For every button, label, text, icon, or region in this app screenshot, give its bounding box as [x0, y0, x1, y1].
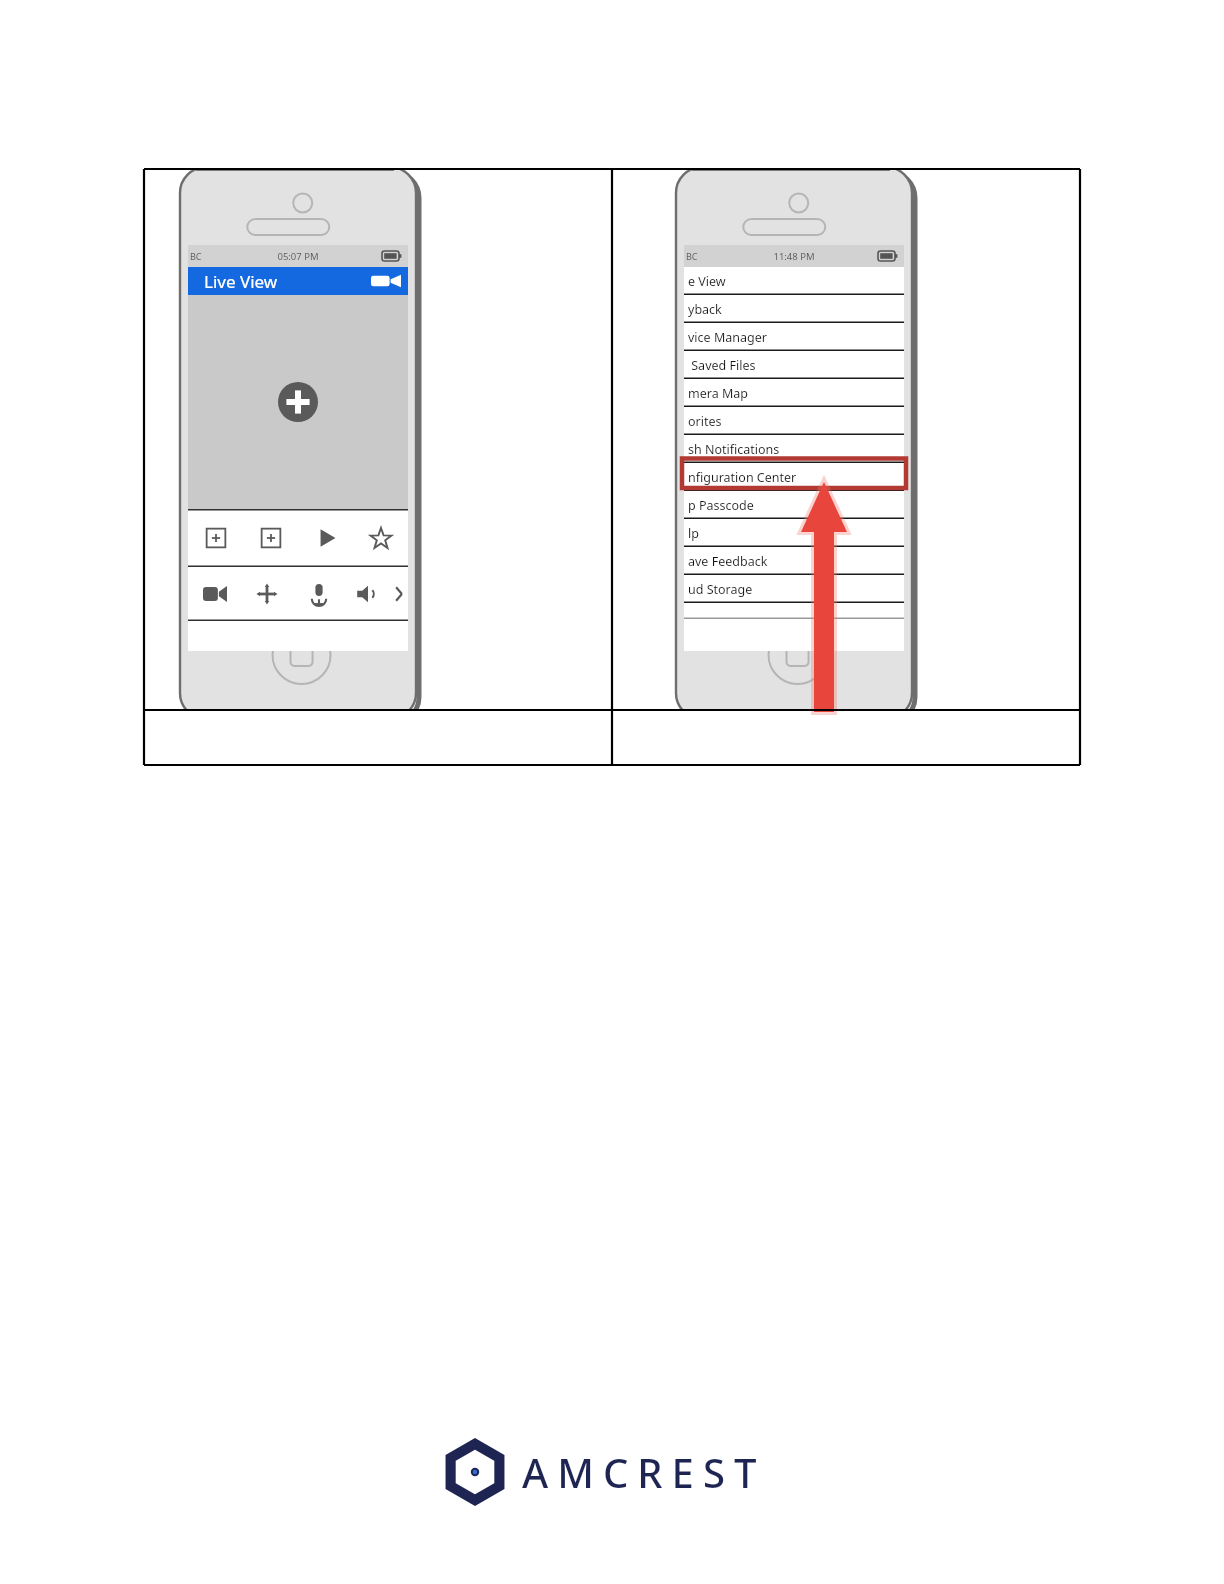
button[interactable]: Pan tilt [241, 567, 293, 621]
button[interactable]: Favorites [353, 509, 408, 567]
button[interactable]: Single window [188, 509, 243, 567]
staticText: nfiguration Center [688, 469, 797, 486]
staticText: orites [688, 413, 722, 430]
staticText: ave Feedback [688, 553, 768, 570]
staticText: Live View [204, 270, 278, 293]
button[interactable]: mera Map [684, 379, 904, 407]
button[interactable]: Talk [293, 567, 345, 621]
button[interactable]: Volume [345, 567, 390, 621]
staticText: BC [190, 250, 202, 262]
button[interactable]: nfiguration Center [684, 463, 904, 491]
button[interactable]: Camera [368, 267, 404, 295]
button[interactable]: ave Feedback [684, 547, 904, 575]
button[interactable]: e View [684, 267, 904, 295]
button[interactable]: yback [684, 295, 904, 323]
button[interactable]: Play [298, 509, 353, 567]
staticText: yback [688, 301, 722, 318]
staticText: e View [688, 273, 726, 290]
staticText: lp [688, 525, 699, 542]
staticText: ud Storage [688, 581, 753, 598]
button[interactable]: Four windows [243, 509, 298, 567]
button[interactable]: orites [684, 407, 904, 435]
staticText: mera Map [688, 385, 748, 402]
button[interactable]: sh Notifications [684, 435, 904, 463]
staticText: BC [686, 250, 698, 262]
staticText: p Passcode [688, 497, 754, 514]
button[interactable]: Record [188, 567, 241, 621]
button[interactable]: Live View [188, 267, 408, 295]
staticText: sh Notifications [688, 441, 780, 458]
staticText: 05:07 PM [277, 250, 319, 263]
button[interactable]: Saved Files [684, 351, 904, 379]
button[interactable]: ud Storage [684, 575, 904, 603]
button[interactable]: Add camera [278, 382, 318, 422]
button[interactable]: lp [684, 519, 904, 547]
button[interactable]: vice Manager [684, 323, 904, 351]
staticText: Saved Files [688, 357, 756, 374]
staticText: AMCREST [522, 1445, 766, 1499]
button[interactable]: More [390, 567, 408, 621]
staticText: 11:48 PM [773, 250, 815, 263]
staticText: vice Manager [688, 329, 767, 346]
button[interactable]: p Passcode [684, 491, 904, 519]
